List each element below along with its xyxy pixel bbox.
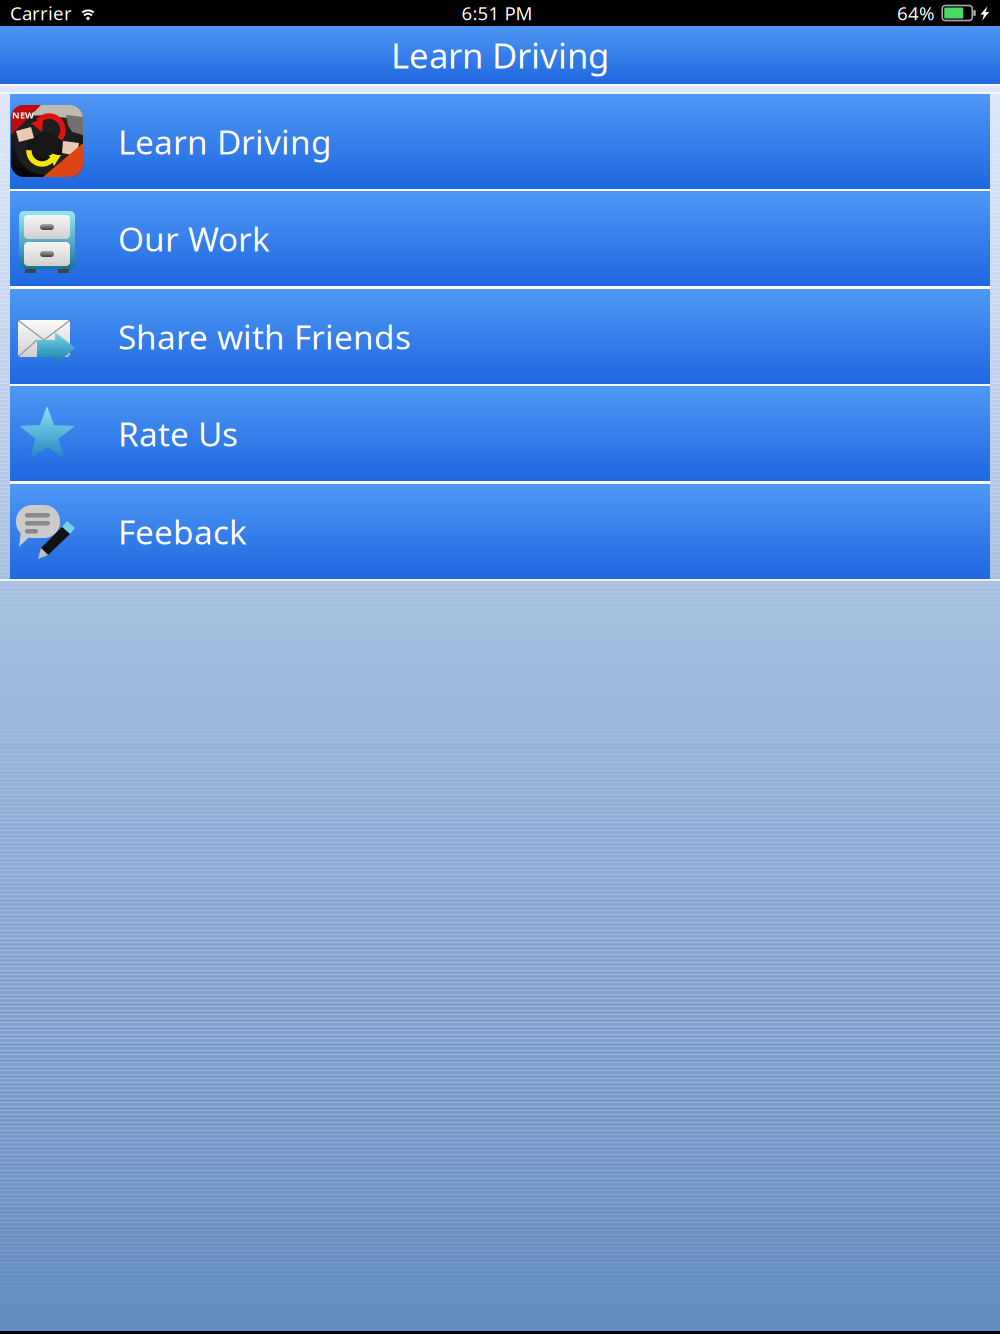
staticText: Our Work (118, 216, 270, 261)
staticText: Feeback (118, 509, 247, 554)
staticText: Rate Us (118, 411, 238, 456)
staticText: Learn Driving (118, 119, 332, 164)
staticText: Carrier (10, 1, 72, 25)
button[interactable]: Feeback (10, 484, 990, 579)
staticText: 64% (897, 1, 935, 25)
staticText: 6:51 PM (461, 1, 532, 25)
staticText: Share with Friends (118, 314, 411, 359)
staticText: NEW (12, 109, 34, 121)
button[interactable]: NEW (10, 94, 990, 189)
button[interactable]: Rate Us (10, 386, 990, 481)
staticText: Learn Driving (391, 32, 609, 78)
button[interactable]: Our Work (10, 191, 990, 286)
button[interactable]: Share with Friends (10, 289, 990, 384)
